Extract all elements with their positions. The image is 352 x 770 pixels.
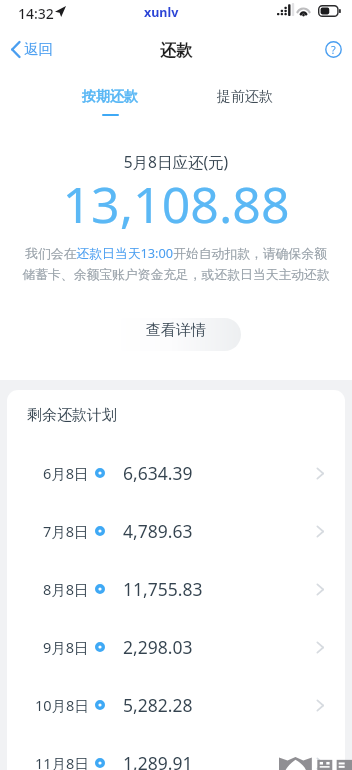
button[interactable]: 提前还款 bbox=[217, 70, 273, 114]
staticText: 我们会在还款日当天13:00开始自动扣款，请确保余额 储蓄卡、余额宝账户资金充足… bbox=[8, 244, 344, 283]
staticText: 1,289.91 bbox=[123, 751, 193, 770]
staticText: 5月8日应还(元) bbox=[0, 151, 352, 172]
staticText: 6,634.39 bbox=[123, 461, 193, 485]
staticText: 8月8日 bbox=[43, 579, 89, 599]
button[interactable]: 返回 bbox=[11, 28, 53, 70]
button[interactable]: 按期还款 bbox=[82, 70, 138, 116]
button[interactable]: 10月8日 bbox=[7, 676, 345, 734]
staticText: 6月8日 bbox=[43, 463, 89, 483]
staticText: 7月8日 bbox=[43, 521, 89, 541]
button[interactable]: 9月8日 bbox=[7, 618, 345, 676]
staticText: 按期还款 bbox=[82, 88, 138, 106]
staticText: xunlv bbox=[144, 4, 179, 21]
staticText: 11月8日 bbox=[35, 753, 89, 770]
staticText: 提前还款 bbox=[217, 88, 273, 106]
button[interactable]: Help bbox=[325, 41, 342, 58]
staticText: 查看详情 bbox=[146, 321, 206, 340]
button[interactable]: 8月8日 bbox=[7, 560, 345, 618]
staticText: 2,298.03 bbox=[123, 635, 193, 659]
staticText: 剩余还款计划 bbox=[27, 406, 117, 425]
staticText: 11,755.83 bbox=[123, 577, 203, 601]
staticText: 5,282.28 bbox=[123, 693, 193, 717]
staticText: 10月8日 bbox=[35, 695, 89, 715]
button[interactable]: 11月8日 bbox=[7, 734, 345, 770]
staticText: ? bbox=[331, 42, 336, 57]
button[interactable]: 查看详情 bbox=[111, 318, 241, 351]
staticText: 14:32 bbox=[18, 4, 54, 23]
button[interactable]: 6月8日 bbox=[7, 444, 345, 502]
staticText: 返回 bbox=[24, 40, 53, 58]
button[interactable]: 7月8日 bbox=[7, 502, 345, 560]
staticText: 9月8日 bbox=[43, 637, 89, 657]
staticText: 4,789.63 bbox=[123, 519, 193, 543]
staticText: 13,108.88 bbox=[0, 170, 352, 238]
staticText: 还款 bbox=[160, 41, 192, 61]
